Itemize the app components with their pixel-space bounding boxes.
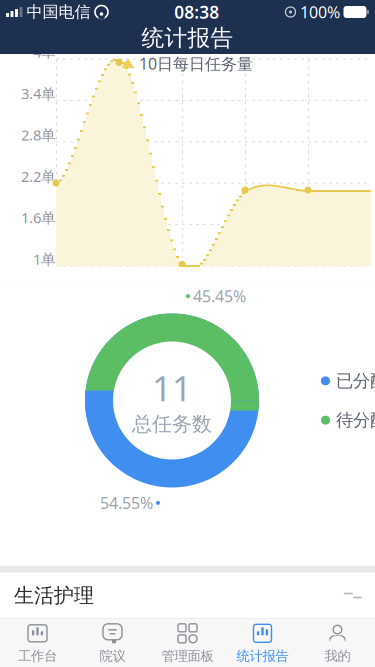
staticText: 院议	[99, 648, 125, 664]
staticText: 45.45%	[193, 285, 246, 307]
button[interactable]: 生活护理	[0, 572, 375, 618]
staticText: 生活护理	[14, 583, 94, 608]
staticText: 待分配	[336, 409, 375, 431]
staticText: 3.4单	[21, 84, 56, 103]
button[interactable]: 我的	[300, 619, 375, 667]
staticText: 08:38	[174, 0, 219, 23]
staticText: 统计报告	[236, 648, 288, 664]
staticText: 工作台	[18, 648, 57, 664]
button[interactable]: 工作台	[0, 619, 75, 667]
staticText: 10日每日任务量	[139, 53, 253, 74]
staticText: 已分配	[336, 370, 375, 391]
staticText: 2.8单	[21, 125, 56, 145]
staticText: 1.6单	[21, 208, 56, 227]
staticText: 4单	[33, 42, 56, 62]
staticText: 100%	[300, 1, 340, 23]
button[interactable]: 院议	[75, 619, 150, 667]
staticText: 11	[152, 365, 192, 411]
staticText: 1单	[33, 249, 56, 269]
staticText: 54.55%	[100, 492, 153, 513]
staticText: 我的	[324, 648, 350, 664]
staticText: 统计报告	[141, 24, 233, 52]
button[interactable]: 统计报告	[225, 619, 300, 667]
staticText: 总任务数	[132, 412, 212, 436]
button[interactable]: 管理面板	[150, 619, 225, 667]
staticText: 管理面板	[161, 648, 213, 664]
staticText: 中国电信	[26, 2, 90, 22]
staticText: 2.2单	[21, 166, 56, 186]
